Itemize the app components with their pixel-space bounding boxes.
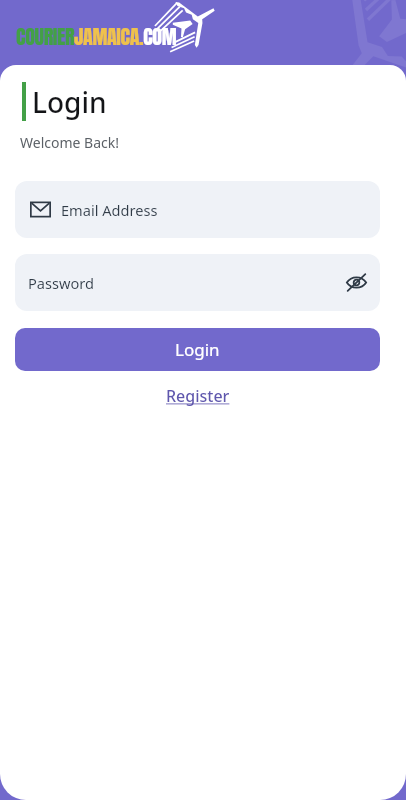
button[interactable]: Login <box>15 328 380 371</box>
staticText: Login <box>32 83 107 121</box>
staticText: Email Address <box>61 200 158 220</box>
staticText: Login <box>175 338 220 361</box>
staticText: COURIERJAMAICA.COM <box>16 21 177 51</box>
button[interactable]: Email Address <box>15 181 380 238</box>
staticText: Welcome Back! <box>20 133 119 152</box>
button[interactable]: Password <box>15 254 380 311</box>
button[interactable]: Show password <box>340 267 372 299</box>
button[interactable]: Register <box>162 381 234 411</box>
staticText: Password <box>28 273 95 293</box>
